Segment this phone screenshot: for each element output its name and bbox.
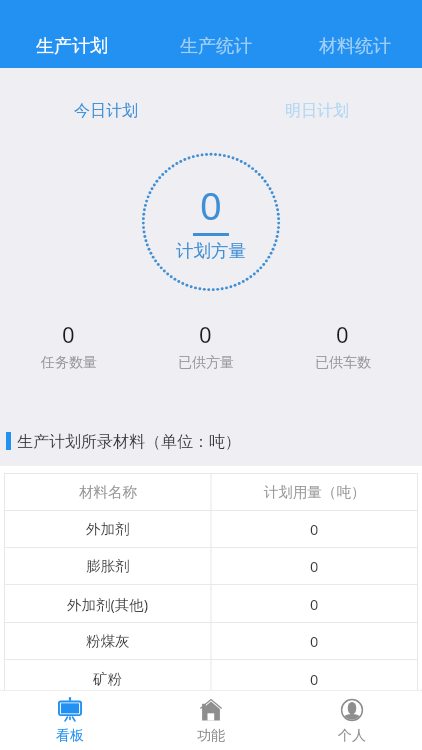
button[interactable]: 计划用量（吨） (211, 474, 418, 510)
other: 看板 (58, 697, 82, 722)
button[interactable]: 个人 (281, 691, 422, 750)
button[interactable]: 看板 (0, 691, 140, 750)
button[interactable]: 0 (211, 548, 418, 584)
button[interactable]: 0 (211, 623, 418, 659)
button[interactable]: 外加剂(其他) (4, 585, 211, 622)
staticText: 今日计划 (74, 101, 138, 121)
staticText: 材料统计 (319, 35, 391, 58)
other: 个人 (341, 699, 363, 721)
staticText: 功能 (197, 727, 225, 745)
staticText: 明日计划 (285, 101, 349, 121)
button[interactable]: 材料名称 (4, 474, 211, 510)
staticText: 0 (310, 631, 319, 651)
button[interactable]: 生产统计 (144, 24, 288, 68)
staticText: 0 (199, 319, 212, 349)
staticText: 粉煤灰 (86, 632, 130, 650)
staticText: 任务数量 (41, 354, 97, 372)
staticText: 外加剂 (86, 520, 130, 538)
button[interactable]: 0 (0, 319, 137, 372)
button[interactable]: 粉煤灰 (4, 623, 211, 659)
staticText: 材料名称 (79, 483, 137, 501)
staticText: 已供车数 (315, 354, 371, 372)
staticText: 0 (336, 319, 349, 349)
button[interactable]: 今日计划 (0, 101, 211, 121)
button[interactable]: 0 (137, 319, 274, 372)
button[interactable]: 0 (211, 511, 418, 547)
staticText: 0 (310, 669, 319, 689)
staticText: 生产统计 (180, 35, 252, 58)
staticText: 0 (310, 519, 319, 539)
staticText: 0 (200, 179, 222, 231)
button[interactable]: 生产计划 (0, 24, 144, 68)
button[interactable]: 明日计划 (211, 101, 422, 121)
staticText: 0 (62, 319, 75, 349)
staticText: 0 (310, 556, 319, 576)
button[interactable]: 外加剂 (4, 511, 211, 547)
button[interactable]: 膨胀剂 (4, 548, 211, 584)
staticText: 0 (310, 594, 319, 614)
staticText: 看板 (56, 727, 84, 745)
button[interactable]: 功能 (140, 691, 281, 750)
button[interactable]: 0 (211, 585, 418, 622)
staticText: 个人 (338, 727, 366, 745)
staticText: 生产计划 (36, 35, 108, 58)
other: 功能 (200, 699, 222, 721)
button[interactable]: 0 (274, 319, 411, 372)
button[interactable]: 矿粉 (4, 660, 211, 697)
staticText: 矿粉 (93, 670, 122, 688)
staticText: 已供方量 (178, 354, 234, 372)
staticText: 外加剂(其他) (67, 594, 149, 614)
button[interactable]: 0 (211, 660, 418, 697)
staticText: 计划方量 (176, 240, 246, 262)
button[interactable]: 材料统计 (288, 24, 422, 68)
staticText: 计划用量（吨） (264, 483, 366, 501)
staticText: 膨胀剂 (86, 557, 130, 575)
staticText: 生产计划所录材料（单位：吨） (17, 432, 241, 450)
